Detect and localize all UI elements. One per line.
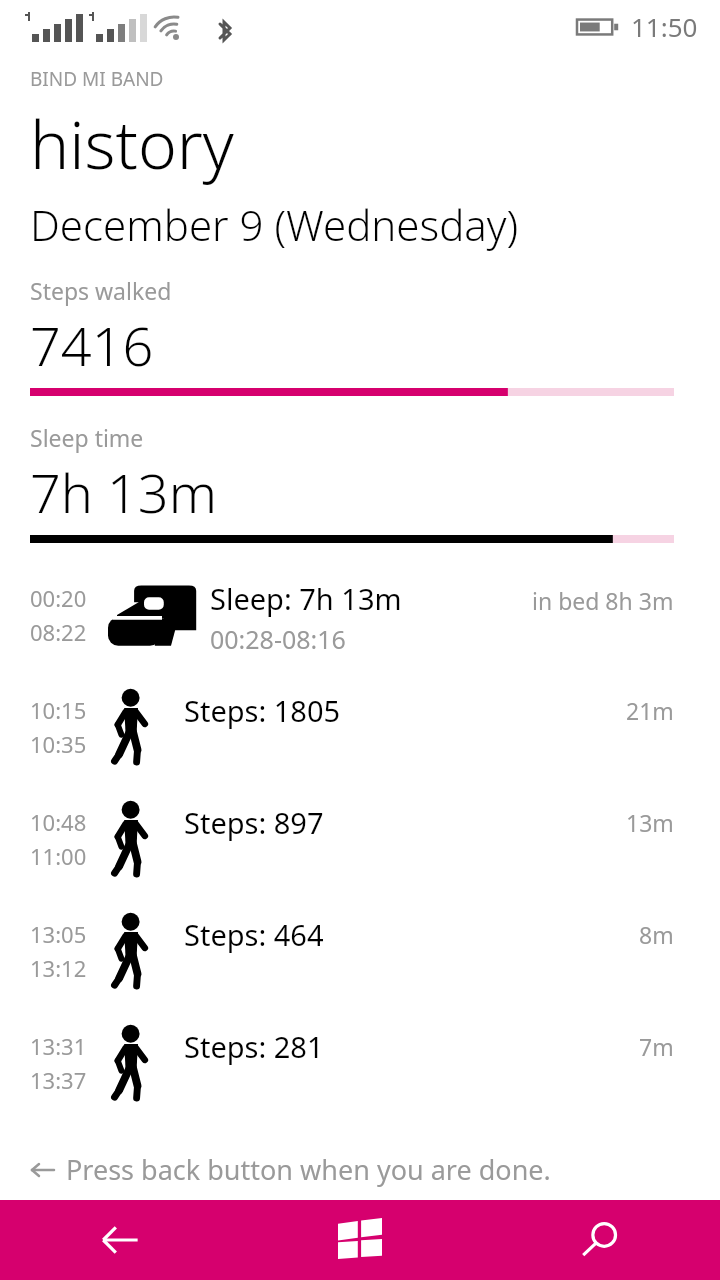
staticText: 7m (639, 1031, 674, 1062)
staticText: 10:48 (30, 807, 87, 837)
staticText: 10:15 (30, 695, 87, 725)
staticText: 8m (639, 919, 674, 950)
staticText: 13:37 (30, 1065, 87, 1095)
staticText: Steps: 1805 (184, 691, 341, 730)
staticText: 21m (626, 695, 674, 726)
button[interactable]: 00:20 (0, 577, 720, 689)
staticText: 13m (626, 807, 674, 838)
staticText: 00:28-08:16 (210, 622, 346, 656)
staticText: 13:12 (30, 953, 87, 983)
staticText: in bed 8h 3m (532, 585, 674, 616)
staticText: Steps: 281 (184, 1027, 324, 1066)
other: Back (30, 1158, 56, 1182)
button[interactable]: 13:05 (0, 913, 720, 1025)
staticText: Press back button when you are done. (66, 1151, 551, 1188)
button[interactable]: Back (0, 1200, 240, 1280)
button[interactable]: Search (480, 1200, 720, 1280)
staticText: Steps walked (30, 275, 172, 306)
staticText: 10:35 (30, 729, 87, 759)
staticText: 11:50 (631, 9, 698, 44)
staticText: Sleep: 7h 13m (210, 579, 402, 618)
staticText: Steps: 897 (184, 803, 324, 842)
button[interactable]: 10:48 (0, 801, 720, 913)
staticText: history (30, 98, 234, 188)
staticText: 7416 (30, 308, 154, 382)
button[interactable]: Back (0, 1147, 720, 1196)
staticText: Steps: 464 (184, 915, 324, 954)
staticText: Sleep time (30, 422, 144, 453)
staticText: 13:05 (30, 919, 87, 949)
staticText: 11:00 (30, 841, 87, 871)
button[interactable]: Start (240, 1200, 480, 1280)
staticText: BIND MI BAND (30, 66, 164, 92)
staticText: December 9 (Wednesday) (30, 196, 519, 253)
staticText: 7h 13m (30, 455, 217, 529)
button[interactable]: 13:31 (0, 1025, 720, 1137)
staticText: 00:20 (30, 583, 87, 613)
staticText: 13:31 (30, 1031, 87, 1061)
staticText: 08:22 (30, 617, 87, 647)
button[interactable]: 10:15 (0, 689, 720, 801)
